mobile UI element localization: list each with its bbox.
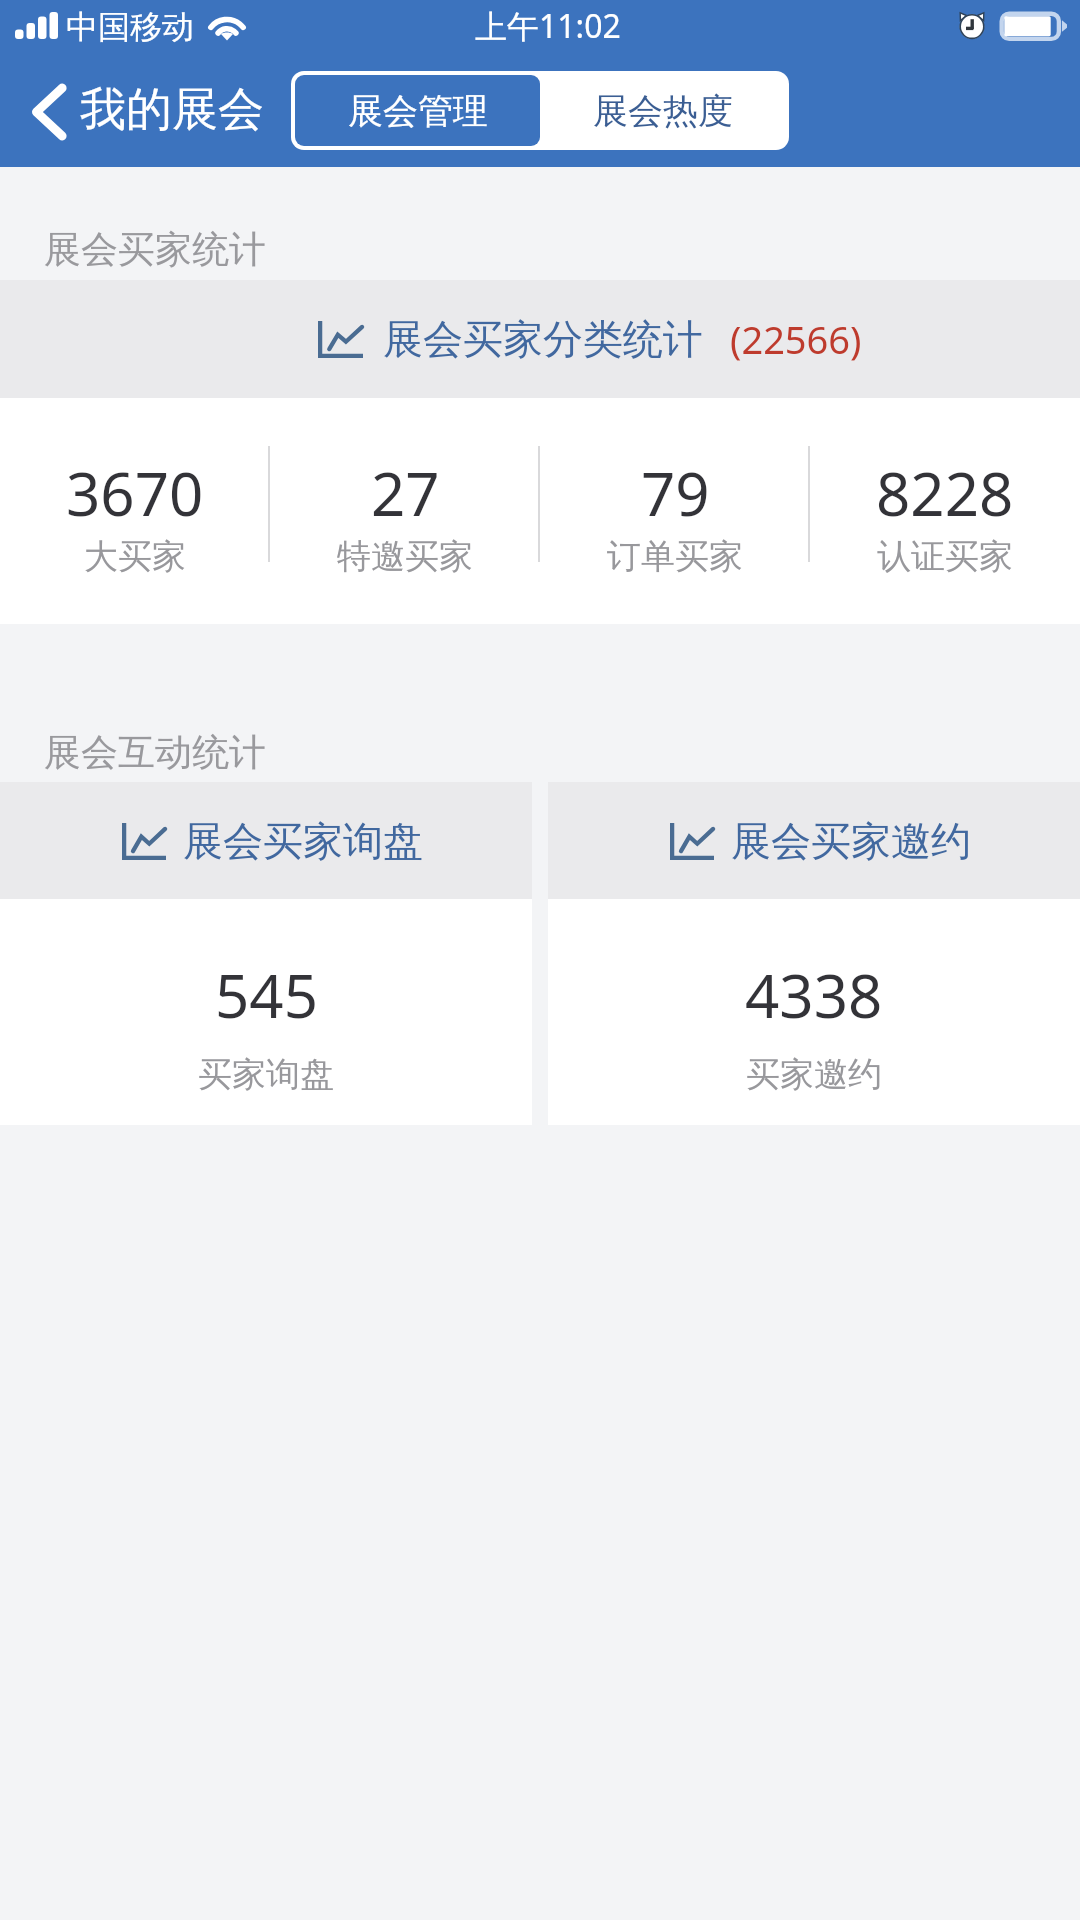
staticText: 特邀买家 (337, 535, 473, 578)
staticText: 订单买家 (607, 535, 743, 578)
staticText: (22566) (730, 313, 862, 365)
staticText: 我的展会 (80, 81, 264, 139)
button[interactable]: 3670 (0, 398, 270, 624)
staticText: 27 (371, 452, 440, 534)
staticText: 上午11:02 (475, 4, 621, 48)
staticText: 展会管理 (348, 89, 488, 133)
staticText: 545 (215, 954, 318, 1036)
button[interactable]: 79 (540, 398, 810, 624)
button[interactable]: 展会买家分类统计 (0, 280, 1080, 398)
button[interactable]: 返回 我的展会 (16, 70, 266, 154)
button[interactable]: 展会热度 (540, 75, 785, 146)
staticText: 79 (641, 452, 710, 534)
staticText: 展会热度 (593, 89, 733, 133)
staticText: 展会买家询盘 (183, 816, 423, 866)
staticText: 买家询盘 (198, 1053, 334, 1096)
staticText: 展会互动统计 (44, 729, 266, 776)
staticText: 认证买家 (877, 535, 1013, 578)
button[interactable]: 展会买家询盘 (0, 782, 532, 1125)
staticText: 展会买家分类统计 (383, 314, 703, 364)
staticText: 中国移动 (66, 7, 194, 47)
button[interactable]: 27 (270, 398, 540, 624)
staticText: 大买家 (84, 535, 186, 578)
staticText: 3670 (66, 452, 204, 534)
staticText: 4338 (745, 954, 883, 1036)
staticText: 8228 (876, 452, 1014, 534)
button[interactable]: 8228 (810, 398, 1080, 624)
staticText: 展会买家统计 (44, 226, 266, 273)
button[interactable]: 展会管理 (295, 75, 540, 146)
staticText: 买家邀约 (746, 1053, 882, 1096)
button[interactable]: 展会买家邀约 (548, 782, 1080, 1125)
staticText: 展会买家邀约 (731, 816, 971, 866)
